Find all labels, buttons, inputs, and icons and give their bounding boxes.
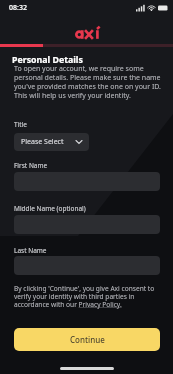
staticText: First Name [14,161,48,170]
staticText: To open your account, we require some pe… [14,64,173,100]
staticText: Title [14,120,27,129]
button[interactable]: Please Select [14,133,89,151]
staticText: Personal Details [12,54,83,66]
staticText: Please Select [21,137,64,147]
staticText: Last Name [14,246,47,255]
staticText: By clicking 'Continue', you give Axi con… [14,284,161,309]
button[interactable]: Continue [14,328,160,351]
staticText: 08:32 [9,3,27,13]
staticText: Middle Name (optional) [14,204,86,213]
staticText: Continue [70,334,105,345]
